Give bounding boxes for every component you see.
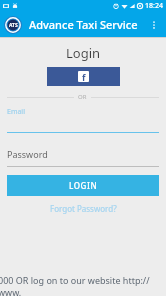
- button[interactable]: Email: [7, 107, 159, 133]
- button[interactable]: Password: [7, 148, 159, 167]
- button[interactable]: Sign in with Facebook: [47, 67, 120, 86]
- staticText: Forgot Password?: [50, 203, 117, 214]
- button[interactable]: More options: [146, 17, 162, 33]
- staticText: ATS: [9, 22, 18, 29]
- staticText: Login: [66, 44, 101, 62]
- staticText: 000 OR log on to our website http://www.: [0, 274, 164, 296]
- staticText: Advance Taxi Service: [29, 17, 138, 32]
- staticText: 18:24: [145, 1, 163, 11]
- button[interactable]: LOGIN: [7, 175, 159, 196]
- staticText: Password: [7, 148, 48, 160]
- staticText: OR: [78, 93, 87, 101]
- button[interactable]: Forgot Password?: [46, 201, 121, 216]
- staticText: LOGIN: [69, 180, 98, 191]
- staticText: Email: [7, 107, 25, 117]
- staticText: f: [82, 71, 86, 82]
